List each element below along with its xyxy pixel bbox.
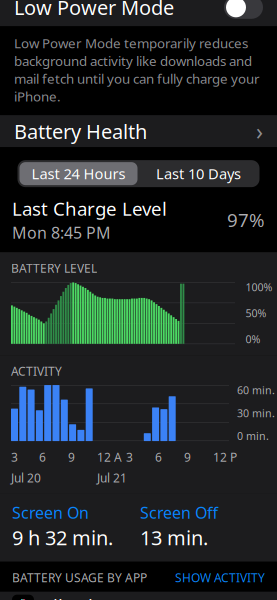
button[interactable]: Last 10 Days xyxy=(139,162,257,185)
staticText: 6 xyxy=(155,449,162,465)
staticText: 100% xyxy=(245,280,272,294)
staticText: ACTIVITY xyxy=(11,363,62,379)
staticText: Mon 8:45 PM xyxy=(12,222,111,243)
staticText: 0% xyxy=(245,332,260,346)
staticText: 3 xyxy=(126,449,133,465)
staticText: 6 xyxy=(39,449,46,465)
staticText: BATTERY LEVEL xyxy=(11,260,97,276)
button[interactable]: Low Power Mode xyxy=(0,0,277,26)
staticText: Jul 21 xyxy=(97,470,127,486)
staticText: SHOW ACTIVITY xyxy=(175,570,265,586)
staticText: BATTERY USAGE BY APP xyxy=(12,570,147,586)
staticText: ♪ xyxy=(17,596,28,600)
button[interactable]: ♪ xyxy=(0,592,277,600)
staticText: ♪ xyxy=(16,596,27,600)
button[interactable]: Battery Health xyxy=(0,115,277,147)
staticText: 13 min. xyxy=(140,524,208,551)
staticText: 12 A xyxy=(97,449,122,465)
staticText: 12 P xyxy=(213,449,237,465)
staticText: 60 min. xyxy=(237,383,275,397)
staticText: 9 h 32 min. xyxy=(12,524,113,551)
staticText: › xyxy=(256,116,263,146)
staticText: Last 10 Days xyxy=(156,164,241,183)
button[interactable]: Last 24 Hours xyxy=(19,162,137,185)
staticText: Screen On xyxy=(12,502,89,523)
staticText: Jul 20 xyxy=(11,470,41,486)
staticText: Low Power Mode xyxy=(14,0,174,21)
staticText: 9 xyxy=(184,449,191,465)
staticText: Last Charge Level xyxy=(12,196,167,221)
staticText: Screen Off xyxy=(140,502,218,523)
staticText: TikTok xyxy=(43,593,98,600)
staticText: ♪ xyxy=(19,596,30,600)
staticText: Low Power Mode temporarily reduces backg… xyxy=(14,34,260,105)
staticText: 0 min. xyxy=(237,429,269,443)
staticText: 50% xyxy=(245,306,266,320)
staticText: 9 xyxy=(68,449,75,465)
staticText: Last 24 Hours xyxy=(31,164,125,183)
staticText: 30 min. xyxy=(237,406,275,420)
staticText: Battery Health xyxy=(14,118,147,144)
staticText: 3 xyxy=(11,449,18,465)
staticText: 97% xyxy=(227,207,265,232)
button[interactable]: SHOW ACTIVITY xyxy=(175,570,265,586)
